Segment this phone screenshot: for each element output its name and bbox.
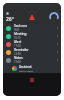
staticText: Meeting: [14, 32, 27, 36]
button[interactable]: Reminder: [3, 48, 61, 56]
staticText: Task one: [14, 24, 28, 28]
button[interactable]: Meeting: [3, 32, 61, 40]
button[interactable]: Assistant: [3, 64, 61, 73]
staticText: ›: [57, 58, 58, 62]
staticText: Assistant: [19, 65, 32, 69]
staticText: Notes: [14, 56, 23, 60]
staticText: ›: [57, 26, 58, 30]
button[interactable]: Record: [30, 78, 34, 82]
staticText: Tap to speak: [19, 69, 34, 72]
staticText: ›: [57, 34, 58, 38]
button[interactable]: 26°: [3, 10, 61, 24]
staticText: 13:00: [14, 60, 21, 64]
staticText: 12:30: [14, 52, 21, 56]
staticText: 26°: [6, 16, 14, 23]
button[interactable]: Task one: [3, 24, 61, 32]
staticText: 11:02: [14, 44, 21, 48]
button[interactable]: Alert: [3, 40, 61, 48]
staticText: ›: [57, 50, 58, 54]
button[interactable]: Notes: [3, 56, 61, 64]
staticText: Alert: [14, 40, 22, 44]
staticText: 10:15: [14, 36, 21, 40]
staticText: Reminder: [14, 48, 29, 52]
staticText: 9:41: [14, 28, 20, 32]
staticText: ›: [57, 42, 58, 46]
